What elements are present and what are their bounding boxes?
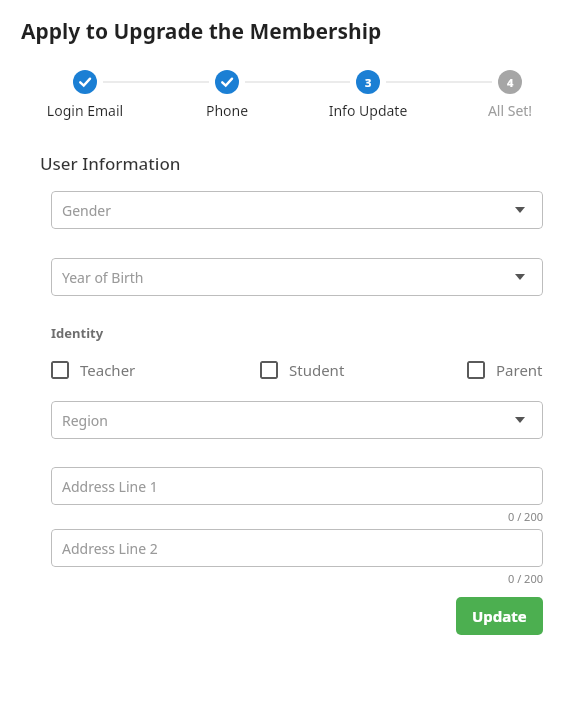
- button[interactable]: Step 3: [308, 70, 428, 120]
- staticText: Info Update: [308, 101, 428, 120]
- staticText: Student: [289, 360, 345, 380]
- staticText: Apply to Upgrade the Membership: [21, 17, 382, 46]
- staticText: Identity: [51, 324, 104, 342]
- other: Step 3: [356, 70, 380, 94]
- button[interactable]: Year of Birth: [51, 258, 543, 296]
- staticText: 3: [365, 75, 372, 90]
- button[interactable]: Completed step: [25, 70, 145, 120]
- staticText: Gender: [62, 201, 112, 220]
- button[interactable]: Update: [456, 597, 543, 635]
- staticText: Update: [472, 606, 527, 626]
- button[interactable]: Gender: [51, 191, 543, 229]
- staticText: Parent: [496, 360, 543, 380]
- staticText: All Set!: [450, 101, 567, 120]
- button[interactable]: Teacher: [51, 360, 136, 380]
- button[interactable]: Parent: [467, 360, 543, 380]
- staticText: Year of Birth: [62, 268, 144, 287]
- staticText: Address Line 2: [62, 539, 158, 558]
- other: Completed step: [73, 70, 97, 94]
- staticText: 0 / 200: [51, 509, 543, 524]
- button[interactable]: Region: [51, 401, 543, 439]
- other: Completed step: [215, 70, 239, 94]
- staticText: Address Line 1: [62, 477, 158, 496]
- staticText: 4: [507, 75, 514, 90]
- other: Step 4: [498, 70, 522, 94]
- staticText: Teacher: [80, 360, 136, 380]
- staticText: Phone: [167, 101, 287, 120]
- staticText: Login Email: [25, 101, 145, 120]
- button[interactable]: Completed step: [167, 70, 287, 120]
- staticText: Region: [62, 411, 108, 430]
- staticText: 0 / 200: [51, 571, 543, 586]
- button[interactable]: Address Line 1: [51, 467, 543, 505]
- button[interactable]: Address Line 2: [51, 529, 543, 567]
- button[interactable]: Student: [260, 360, 345, 380]
- button[interactable]: Step 4: [450, 70, 567, 120]
- staticText: User Information: [40, 152, 181, 175]
